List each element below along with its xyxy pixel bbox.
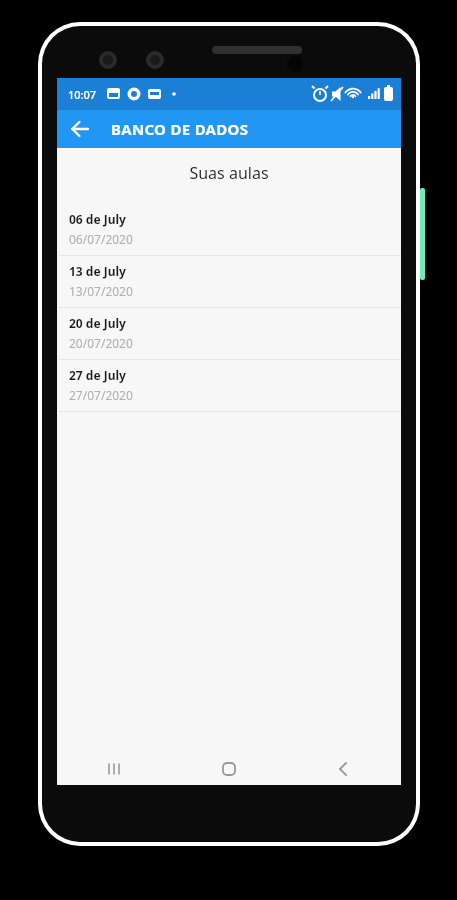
staticText: 10:07 [68, 87, 97, 102]
staticText: 27/07/2020 [69, 387, 133, 403]
staticText: 20 de July [69, 315, 126, 331]
button[interactable]: 27 de July [57, 360, 401, 411]
staticText: 20/07/2020 [69, 335, 133, 351]
staticText: 27 de July [69, 367, 126, 383]
button[interactable]: Recent apps [57, 753, 171, 785]
staticText: 13 de July [69, 263, 126, 279]
button[interactable]: Back [62, 111, 98, 147]
button[interactable]: 06 de July [57, 204, 401, 255]
staticText: 13/07/2020 [69, 283, 133, 299]
button[interactable]: Home [171, 753, 286, 785]
staticText: Suas aulas [57, 162, 401, 184]
button[interactable]: 20 de July [57, 308, 401, 359]
staticText: 06/07/2020 [69, 231, 133, 247]
button[interactable]: 13 de July [57, 256, 401, 307]
staticText: 06 de July [69, 211, 126, 227]
staticText: BANCO DE DADOS [111, 119, 249, 139]
button[interactable]: Back [286, 753, 401, 785]
